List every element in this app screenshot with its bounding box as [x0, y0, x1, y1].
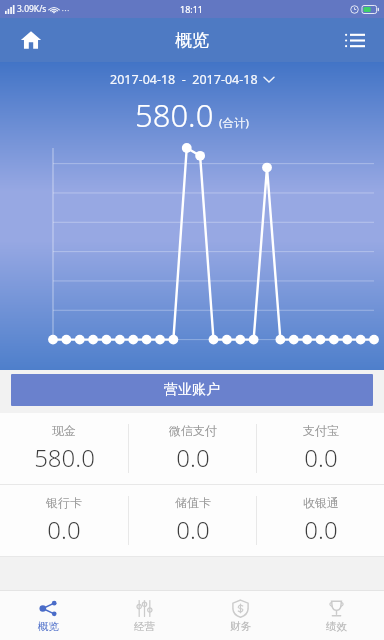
staticText: 580.0: [34, 441, 95, 474]
staticText: 收银通: [303, 495, 339, 510]
staticText: 现金: [52, 423, 76, 438]
button[interactable]: 概览: [0, 591, 96, 640]
staticText: 财务: [230, 620, 251, 633]
button[interactable]: 经营: [96, 591, 192, 640]
button[interactable]: 支付宝: [257, 413, 384, 484]
staticText: 0.0: [47, 513, 81, 546]
button[interactable]: 储值卡: [129, 485, 256, 556]
staticText: 0.0: [304, 441, 338, 474]
button[interactable]: 绩效: [288, 591, 384, 640]
staticText: 18:11: [180, 3, 204, 15]
staticText: 580.0: [135, 94, 214, 136]
button[interactable]: 2017-04-18 - 2017-04-18: [0, 71, 384, 88]
staticText: (合计): [219, 115, 249, 131]
staticText: 银行卡: [46, 495, 82, 510]
button[interactable]: List: [338, 23, 372, 57]
staticText: 经营: [134, 620, 155, 633]
staticText: 营业账户: [164, 381, 220, 399]
staticText: 概览: [38, 620, 59, 633]
staticText: 支付宝: [303, 423, 339, 438]
button[interactable]: 银行卡: [0, 485, 128, 556]
button[interactable]: 营业账户: [11, 374, 373, 406]
staticText: 储值卡: [175, 495, 211, 510]
staticText: 3.09K/s: [17, 3, 47, 15]
button[interactable]: 财务: [192, 591, 288, 640]
button[interactable]: Home: [14, 23, 48, 57]
button[interactable]: 收银通: [257, 485, 384, 556]
staticText: 微信支付: [169, 423, 217, 438]
button[interactable]: 微信支付: [129, 413, 256, 484]
staticText: 0.0: [304, 513, 338, 546]
staticText: 绩效: [326, 620, 347, 633]
button[interactable]: 现金: [0, 413, 128, 484]
staticText: 2017-04-18 - 2017-04-18: [110, 71, 258, 88]
staticText: 0.0: [176, 513, 210, 546]
staticText: 0.0: [176, 441, 210, 474]
staticText: 概览: [175, 30, 209, 51]
